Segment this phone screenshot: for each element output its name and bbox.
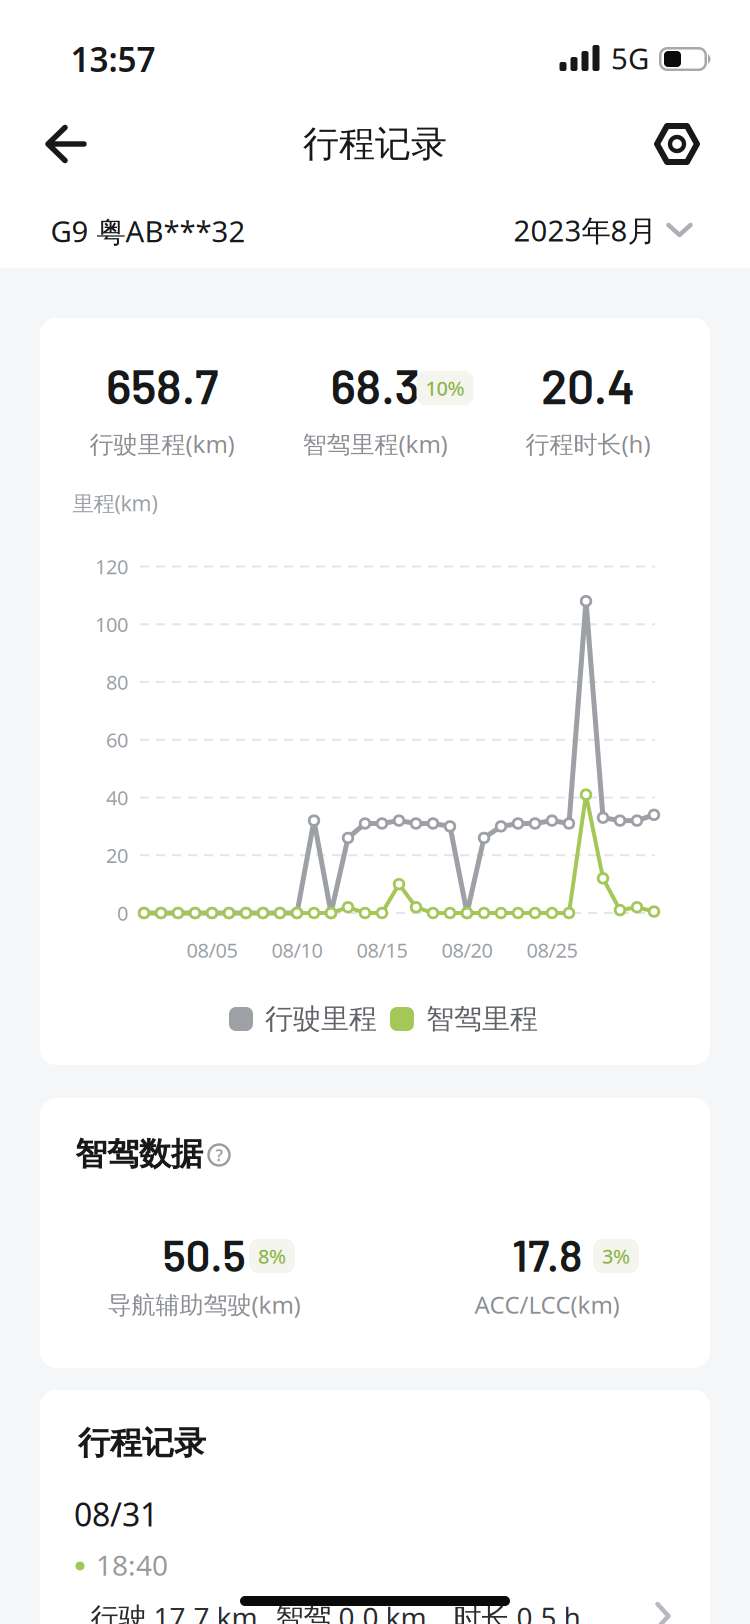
staticText: 行驶里程(km) [89, 428, 234, 460]
staticText: 行驶 17.7 km [90, 1598, 257, 1624]
button[interactable]: G9 粤AB***32 [50, 211, 245, 250]
staticText: 0 [117, 900, 128, 926]
staticText: 时长 0.5 h [453, 1598, 580, 1624]
staticText: 2023年8月 [513, 210, 656, 249]
staticText: 行程时长(h) [525, 428, 650, 460]
staticText: 08/25 [526, 937, 577, 963]
staticText: 08/05 [186, 937, 237, 963]
staticText: 5G [611, 38, 649, 77]
staticText: 120 [95, 553, 128, 580]
button[interactable]: 2023年8月 [513, 210, 692, 249]
staticText: 80 [106, 669, 128, 695]
staticText: ACC/LCC(km) [474, 1288, 619, 1320]
staticText: ? [215, 1144, 222, 1166]
staticText: 行程记录 [78, 1423, 206, 1463]
staticText: 8% [258, 1243, 286, 1269]
staticText: 60 [106, 726, 128, 753]
staticText: 20 [106, 842, 128, 869]
staticText: 行驶里程 [265, 1002, 377, 1036]
staticText: 68.3 [330, 356, 419, 414]
button[interactable]: ? [207, 1143, 230, 1166]
staticText: G9 粤AB***32 [50, 211, 245, 250]
button[interactable] [45, 125, 87, 162]
staticText: 10% [425, 375, 464, 401]
staticText: 18:40 [96, 1546, 168, 1584]
staticText: 40 [106, 784, 128, 811]
staticText: 08/20 [441, 937, 492, 963]
staticText: 3% [602, 1243, 630, 1269]
button[interactable] [657, 125, 697, 162]
staticText: 50.5 [162, 1228, 245, 1280]
staticText: 658.7 [106, 356, 218, 414]
staticText: 智驾里程 [426, 1002, 538, 1036]
staticText: 智驾数据 [75, 1134, 203, 1174]
staticText: 智驾 0.0 km [275, 1598, 426, 1624]
staticText: 13:57 [70, 37, 155, 81]
staticText: 100 [95, 611, 128, 638]
staticText: 20.4 [541, 356, 635, 414]
staticText: 行程记录 [303, 122, 447, 166]
staticText: 17.8 [512, 1228, 582, 1280]
staticText: 08/10 [271, 937, 322, 963]
button[interactable]: 18:40 [70, 1504, 680, 1624]
staticText: 08/31 [74, 1493, 158, 1535]
staticText: 里程(km) [72, 489, 157, 517]
staticText: 智驾里程(km) [302, 428, 447, 460]
staticText: 导航辅助驾驶(km) [107, 1288, 300, 1320]
staticText: 08/15 [356, 937, 407, 963]
